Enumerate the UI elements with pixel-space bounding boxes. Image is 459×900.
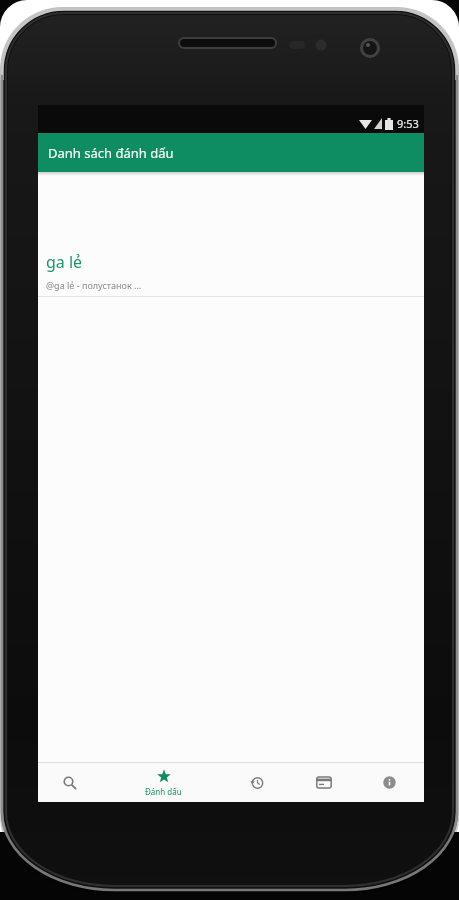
- staticText: @ga lẻ - полустанок ...: [46, 279, 142, 291]
- button[interactable]: Đánh dấu: [135, 764, 191, 802]
- button[interactable]: [367, 763, 411, 802]
- staticText: ga lẻ: [46, 251, 83, 273]
- button[interactable]: [235, 763, 279, 802]
- staticText: Danh sách đánh dấu: [48, 144, 174, 162]
- button[interactable]: [48, 763, 92, 802]
- staticText: Đánh dấu: [145, 786, 182, 797]
- button[interactable]: [302, 763, 346, 802]
- staticText: 9:53: [397, 116, 419, 131]
- button[interactable]: ga lẻ: [38, 251, 424, 296]
